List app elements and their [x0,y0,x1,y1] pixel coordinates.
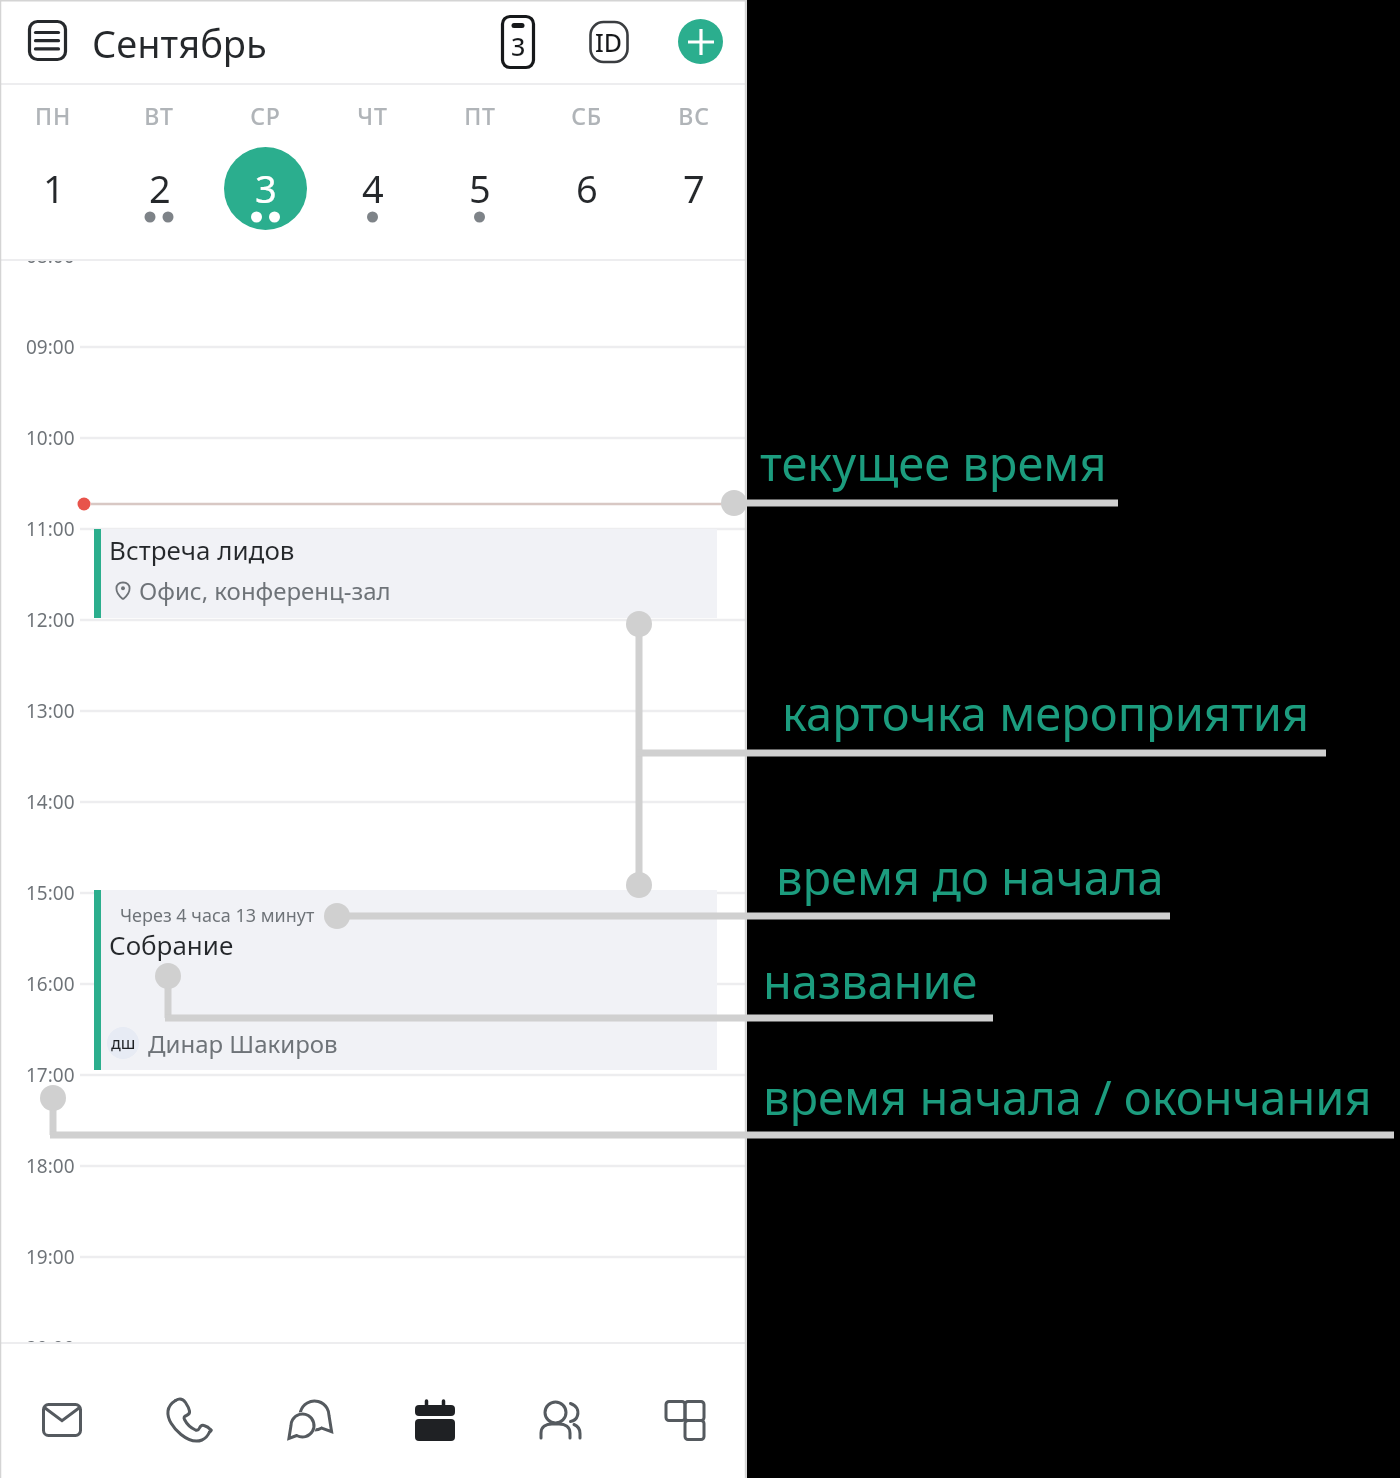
button[interactable]: СР [212,85,319,261]
button[interactable]: Apps [622,1342,747,1478]
staticText: 4 [362,162,384,214]
button[interactable]: Mail [0,1342,124,1478]
button[interactable]: СБ [533,85,640,261]
button[interactable]: Через 4 часа 13 минут [94,890,717,1070]
staticText: Офис, конференц-зал [139,574,391,607]
staticText: 6 [576,162,598,214]
staticText: 09:00 [26,334,75,360]
staticText: 17:00 [26,1062,75,1088]
staticText: 19:00 [26,1244,75,1270]
staticText: 1 [43,162,65,214]
button[interactable]: Menu [18,11,78,71]
staticText: ЧТ [357,100,388,131]
button[interactable]: ВС [640,85,747,261]
staticText: ПН [35,100,71,131]
button[interactable]: Calls [124,1342,248,1478]
staticText: 12:00 [26,607,75,633]
button[interactable]: текущее время [760,431,1107,495]
staticText: Через 4 часа 13 минут [120,903,315,928]
staticText: 2 [149,162,171,214]
staticText: ВТ [144,100,174,131]
button[interactable]: ID [579,12,639,72]
button[interactable]: название [763,949,978,1013]
staticText: 3 [511,29,526,63]
button[interactable]: Calendar [372,1342,497,1478]
staticText: Сентябрь [92,17,267,69]
button[interactable]: Add event [678,19,723,64]
staticText: ID [595,25,623,59]
staticText: ВС [678,100,710,131]
staticText: 18:00 [26,1153,75,1179]
staticText: 15:00 [26,880,75,906]
button[interactable]: Device [488,12,548,72]
button[interactable]: Chats [248,1342,372,1478]
staticText: 5 [469,162,491,214]
button[interactable]: карточка мероприятия [782,681,1310,745]
button[interactable]: ВТ [106,85,212,261]
button[interactable]: ПТ [426,85,533,261]
staticText: 11:00 [26,516,75,542]
staticText: СР [250,100,281,131]
button[interactable]: время начала / окончания [763,1065,1372,1129]
button[interactable]: время до начала [776,845,1164,909]
staticText: 13:00 [26,698,75,724]
button[interactable]: ПН [0,85,106,261]
staticText: 10:00 [26,425,75,451]
button[interactable]: Встреча лидов [94,529,717,618]
staticText: 20:00 [26,1335,75,1342]
staticText: СБ [571,100,602,131]
staticText: Динар Шакиров [148,1027,338,1060]
staticText: 14:00 [26,789,75,815]
staticText: Встреча лидов [109,532,295,567]
button[interactable]: Contacts [497,1342,622,1478]
button[interactable]: ЧТ [319,85,426,261]
staticText: 3 [255,162,277,214]
staticText: Собрание [109,927,234,962]
staticText: 7 [683,162,705,214]
staticText: дш [111,1032,136,1054]
staticText: 16:00 [26,971,75,997]
staticText: ПТ [464,100,496,131]
staticText: 08:00 [26,261,75,269]
